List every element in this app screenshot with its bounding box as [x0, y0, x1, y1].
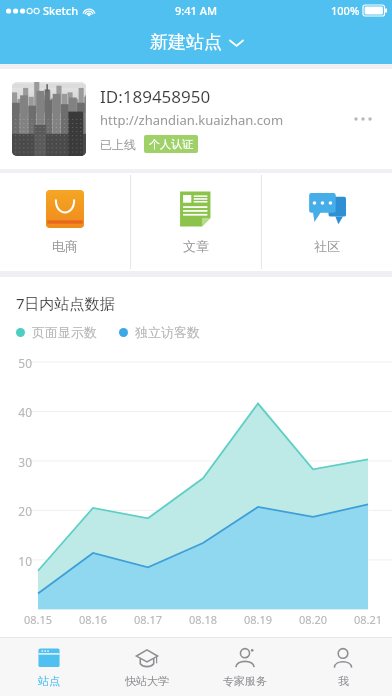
staticText: 个人认证	[149, 137, 193, 151]
staticText: 我	[338, 674, 349, 688]
staticText: 20	[6, 503, 32, 519]
staticText: 已上线	[100, 137, 136, 152]
staticText: 100%	[331, 3, 360, 18]
button[interactable]: 快站大学	[98, 638, 196, 696]
staticText: 7日内站点数据	[16, 293, 115, 313]
staticText: 站点	[38, 674, 60, 688]
staticText: 08.16	[73, 612, 113, 627]
staticText: 9:41 AM	[175, 3, 218, 18]
button[interactable]: 我	[294, 638, 392, 696]
button[interactable]: 专家服务	[196, 638, 294, 696]
button[interactable]: ID:189458950	[0, 69, 392, 169]
staticText: 40	[6, 404, 32, 420]
staticText: 08.17	[128, 612, 168, 627]
button[interactable]: 站点	[0, 638, 98, 696]
button[interactable]: 社区	[262, 173, 392, 271]
button[interactable]: 文章	[131, 173, 261, 271]
staticText: 电商	[52, 238, 78, 254]
staticText: 30	[6, 454, 32, 470]
button[interactable]: 电商	[0, 173, 130, 271]
staticText: Sketch	[43, 3, 79, 18]
staticText: 08.21	[348, 612, 388, 627]
staticText: 社区	[314, 238, 340, 254]
button[interactable]: More options	[346, 102, 380, 136]
staticText: 08.15	[18, 612, 58, 627]
staticText: 专家服务	[223, 674, 267, 688]
staticText: 页面显示数	[32, 324, 97, 340]
staticText: 独立访客数	[135, 324, 200, 340]
staticText: 08.19	[238, 612, 278, 627]
staticText: 50	[6, 355, 32, 371]
staticText: 文章	[183, 238, 209, 254]
staticText: 快站大学	[125, 674, 169, 688]
staticText: 新建站点	[150, 31, 222, 54]
staticText: 08.18	[183, 612, 223, 627]
staticText: ID:189458950	[100, 85, 211, 108]
button[interactable]: 新建站点	[142, 27, 251, 58]
staticText: 08.20	[293, 612, 333, 627]
staticText: 10	[6, 553, 32, 569]
staticText: http://zhandian.kuaizhan.com	[100, 111, 284, 129]
